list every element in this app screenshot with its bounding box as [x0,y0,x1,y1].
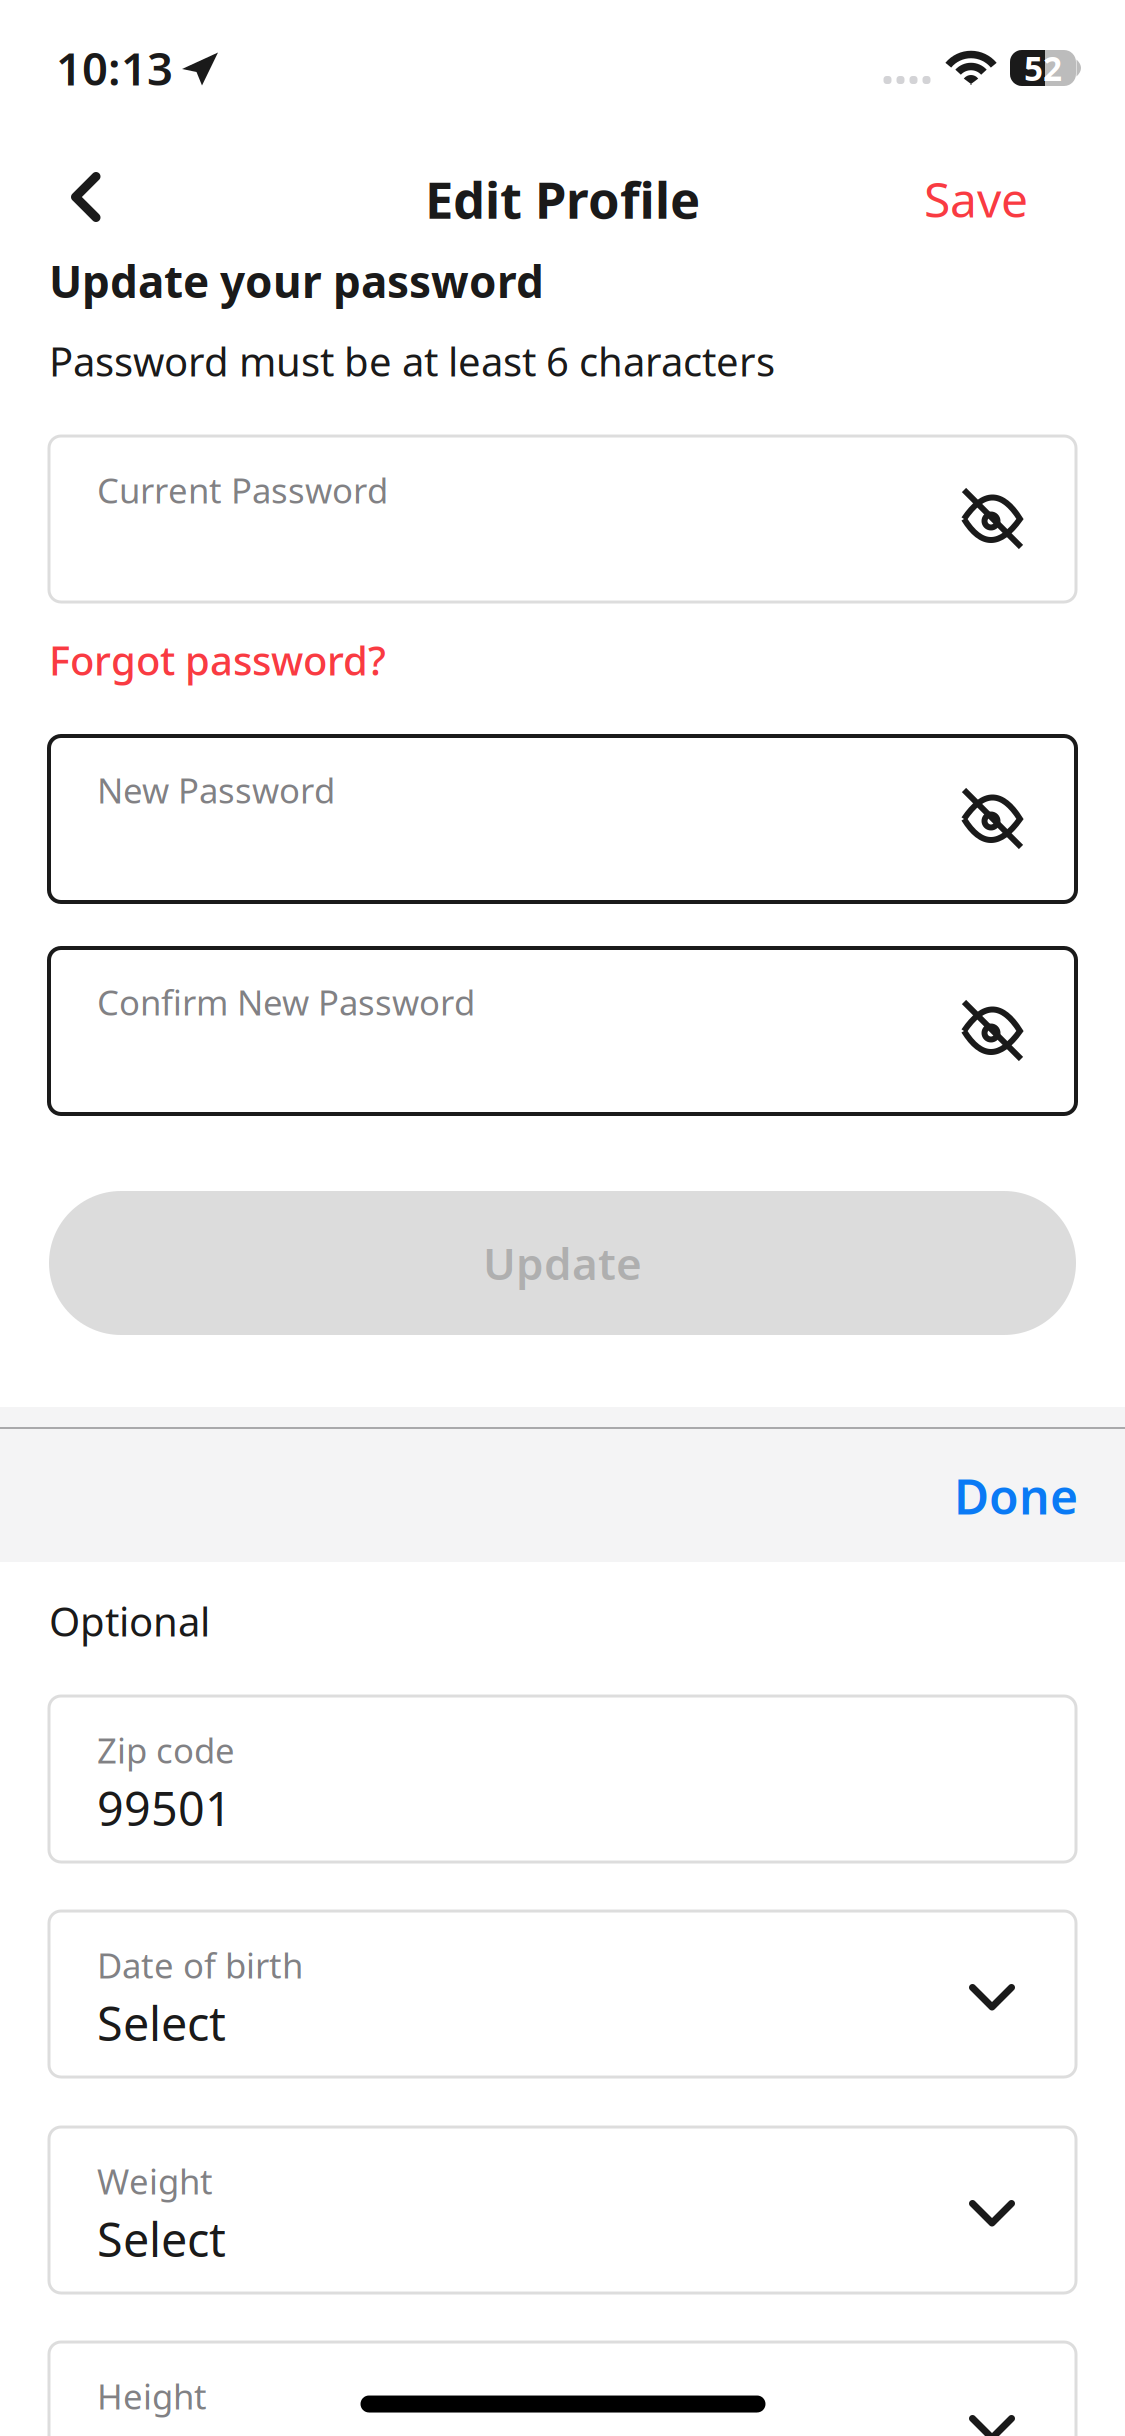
button[interactable]: Date of birth [49,1911,1076,2077]
button[interactable]: Done [916,1436,1116,1556]
staticText: Current Password [97,467,388,513]
staticText: Done [954,1464,1078,1528]
staticText: 10:13 [56,38,173,98]
staticText: Update your password [49,252,544,310]
button[interactable]: Forgot password? [49,627,1076,693]
staticText: 99501 [97,1777,232,1839]
staticText: Confirm New Password [97,979,475,1025]
button[interactable]: Zip code [49,1696,1076,1862]
staticText: 52 [1024,46,1062,90]
staticText: Optional [49,1594,210,1647]
staticText: Update [483,1234,642,1292]
button[interactable]: Save [896,144,1056,254]
button[interactable]: Current Password [49,436,1076,602]
staticText: Forgot password? [49,633,386,686]
staticText: Select [97,2208,226,2270]
staticText: Weight [97,2158,213,2204]
staticText: Save [924,167,1028,231]
staticText: Height [97,2373,207,2419]
staticText: Password must be at least 6 characters [49,334,775,387]
button[interactable]: Weight [49,2127,1076,2293]
staticText: New Password [97,767,335,813]
button[interactable]: Back [31,142,141,252]
staticText: Date of birth [97,1942,303,1988]
staticText: Edit Profile [425,165,700,233]
staticText: Zip code [97,1727,235,1773]
button[interactable]: Height [49,2342,1076,2436]
staticText: Select [97,1992,226,2054]
button[interactable]: Update [49,1191,1076,1335]
button[interactable]: New Password [49,736,1076,902]
button[interactable]: Confirm New Password [49,948,1076,1114]
